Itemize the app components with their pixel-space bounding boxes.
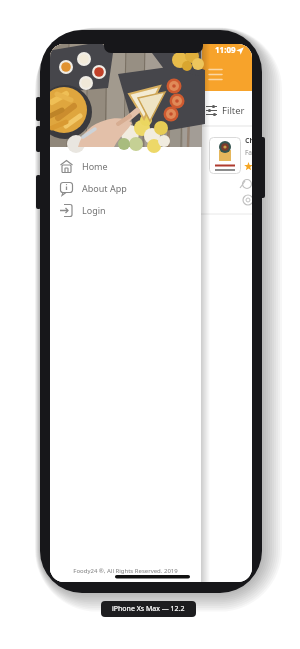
staticText: Fa xyxy=(245,148,252,157)
staticText: Login xyxy=(82,204,106,216)
staticText: Foody24 ®, All Rights Reserved. 2019 xyxy=(50,567,201,582)
button[interactable]: Filter xyxy=(202,99,252,123)
staticText: Ch xyxy=(245,136,252,146)
button[interactable]: About App xyxy=(50,178,201,199)
staticText: 11:09 xyxy=(215,44,236,55)
staticText: iPhone Xs Max — 12.2 xyxy=(112,604,185,614)
button[interactable]: Home xyxy=(50,156,201,177)
staticText: Filter xyxy=(222,104,245,117)
button[interactable] xyxy=(209,137,241,174)
button[interactable] xyxy=(202,62,232,88)
staticText: Home xyxy=(82,160,108,172)
button[interactable]: Login xyxy=(50,200,201,221)
staticText: About App xyxy=(82,182,127,194)
